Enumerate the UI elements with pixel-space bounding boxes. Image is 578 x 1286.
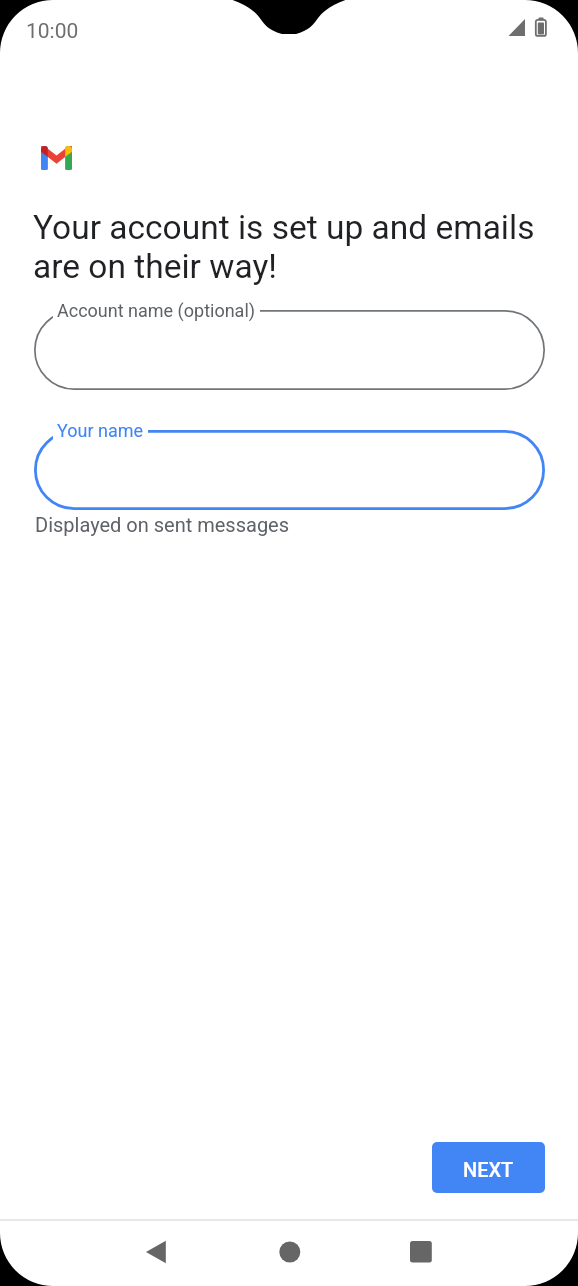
staticText: 10:00 (26, 19, 79, 44)
staticText: NEXT (463, 1158, 514, 1181)
staticText: Your name (57, 420, 144, 441)
staticText: Displayed on sent messages (35, 513, 290, 536)
button[interactable]: NEXT (432, 1142, 545, 1193)
staticText: Your account is set up and emails are on… (33, 208, 545, 286)
button[interactable]: Recent apps (397, 1237, 445, 1285)
button[interactable] (34, 310, 545, 390)
button[interactable]: Home (265, 1237, 313, 1285)
staticText: Account name (optional) (57, 300, 256, 321)
button[interactable] (34, 430, 545, 510)
button[interactable]: Back (132, 1237, 180, 1285)
